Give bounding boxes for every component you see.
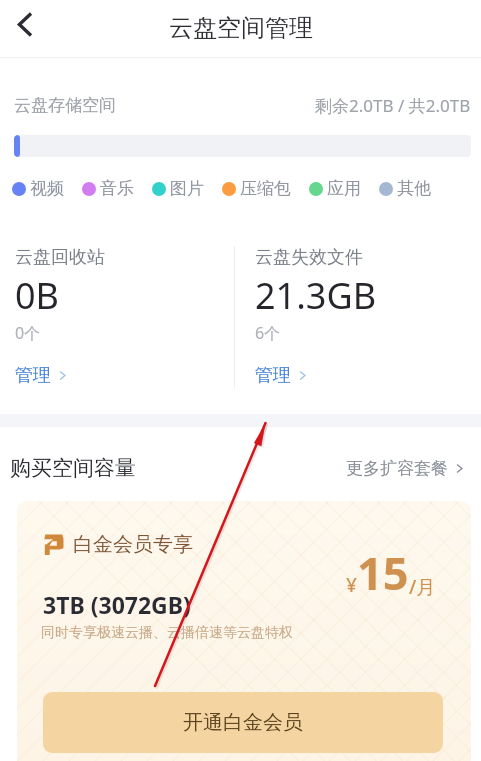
- staticText: 视频: [30, 178, 64, 199]
- staticText: 0个: [15, 322, 41, 344]
- button[interactable]: 管理: [255, 364, 308, 387]
- button[interactable]: 管理: [15, 364, 68, 387]
- staticText: 21.3GB: [255, 271, 377, 320]
- staticText: 云盘失效文件: [255, 246, 363, 269]
- staticText: 购买空间容量: [10, 455, 136, 481]
- staticText: 同时专享极速云播、云播倍速等云盘特权: [41, 624, 293, 642]
- staticText: 压缩包: [240, 178, 291, 199]
- staticText: 云盘回收站: [15, 246, 105, 269]
- staticText: 6个: [255, 322, 281, 344]
- staticText: /月: [409, 574, 436, 600]
- staticText: 管理: [255, 364, 291, 387]
- button[interactable]: 更多扩容套餐: [346, 458, 465, 479]
- staticText: ¥: [346, 572, 357, 598]
- button[interactable]: 开通白金会员: [43, 692, 443, 753]
- button[interactable]: Back: [1, 0, 49, 48]
- staticText: 图片: [170, 178, 204, 199]
- staticText: 白金会员专享: [73, 532, 193, 557]
- staticText: 其他: [397, 178, 431, 199]
- staticText: 15: [357, 542, 409, 603]
- staticText: 音乐: [100, 178, 134, 199]
- staticText: 3TB (3072GB): [43, 589, 191, 620]
- staticText: 管理: [15, 364, 51, 387]
- staticText: 0B: [15, 271, 59, 320]
- staticText: 云盘空间管理: [169, 13, 313, 43]
- staticText: 应用: [327, 178, 361, 199]
- staticText: 云盘存储空间: [14, 95, 116, 116]
- staticText: 开通白金会员: [183, 710, 303, 735]
- staticText: 更多扩容套餐: [346, 458, 448, 479]
- staticText: 剩余2.0TB / 共2.0TB: [315, 94, 471, 117]
